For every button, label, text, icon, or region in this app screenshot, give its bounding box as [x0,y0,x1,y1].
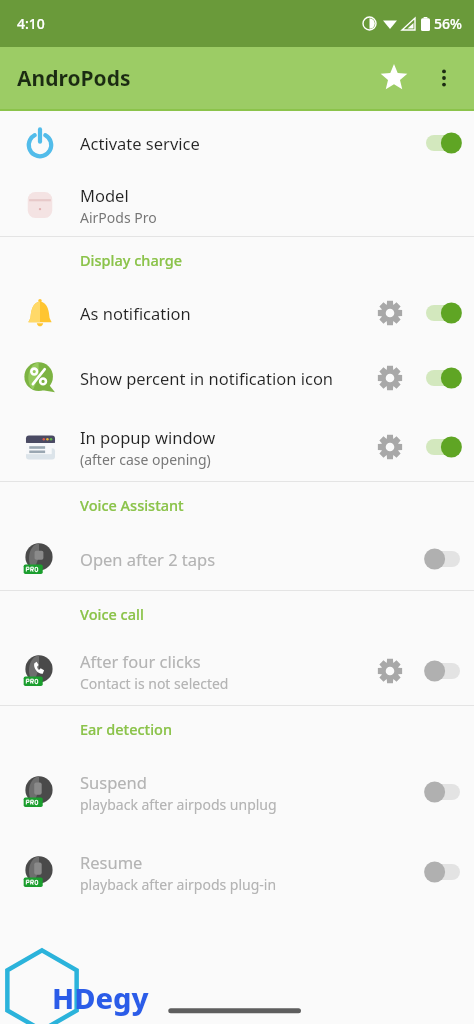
staticText: Open after 2 taps [80,548,216,570]
button[interactable] [412,649,474,693]
staticText: Contact is not selected [80,674,229,693]
staticText: As notification [80,302,191,324]
button[interactable] [412,770,474,814]
button[interactable]: Open after 2 taps [0,528,474,590]
staticText: playback after airpods plug-in [80,875,277,894]
button[interactable] [412,291,474,335]
staticText: Ear detection [80,719,173,739]
button[interactable]: Resume [0,832,474,912]
button[interactable]: Activate service [0,111,474,174]
staticText: AirPods Pro [80,208,157,227]
button[interactable]: Settings [368,291,412,335]
button[interactable]: In popup window [0,413,474,481]
button[interactable]: Settings [368,425,412,469]
staticText: 4:10 [17,14,45,33]
staticText: Activate service [80,132,200,154]
button[interactable]: Favorite [372,56,416,100]
button[interactable]: After four clicks [0,637,474,705]
staticText: After four clicks [80,650,201,672]
button[interactable]: As notification [0,283,474,343]
staticText: playback after airpods unplug [80,795,277,814]
staticText: HDegy [52,978,149,1017]
button[interactable]: Settings [368,356,412,400]
button[interactable]: More options [422,56,466,100]
button[interactable] [412,850,474,894]
button[interactable]: Model [0,174,474,236]
staticText: (after case opening) [80,450,211,469]
staticText: Display charge [80,250,182,270]
staticText: Resume [80,851,143,873]
button[interactable] [412,121,474,165]
button[interactable] [412,537,474,581]
staticText: Voice Assistant [80,495,184,515]
button[interactable]: Suspend [0,752,474,832]
staticText: AndroPods [17,64,131,93]
staticText: 56% [434,14,462,33]
staticText: Model [80,184,129,206]
button[interactable]: Show percent in notification icon [0,343,474,413]
button[interactable]: Settings [368,649,412,693]
staticText: Voice call [80,604,144,624]
button[interactable] [412,356,474,400]
button[interactable] [412,425,474,469]
staticText: In popup window [80,426,216,448]
staticText: Show percent in notification icon [80,367,334,389]
staticText: Suspend [80,771,147,793]
